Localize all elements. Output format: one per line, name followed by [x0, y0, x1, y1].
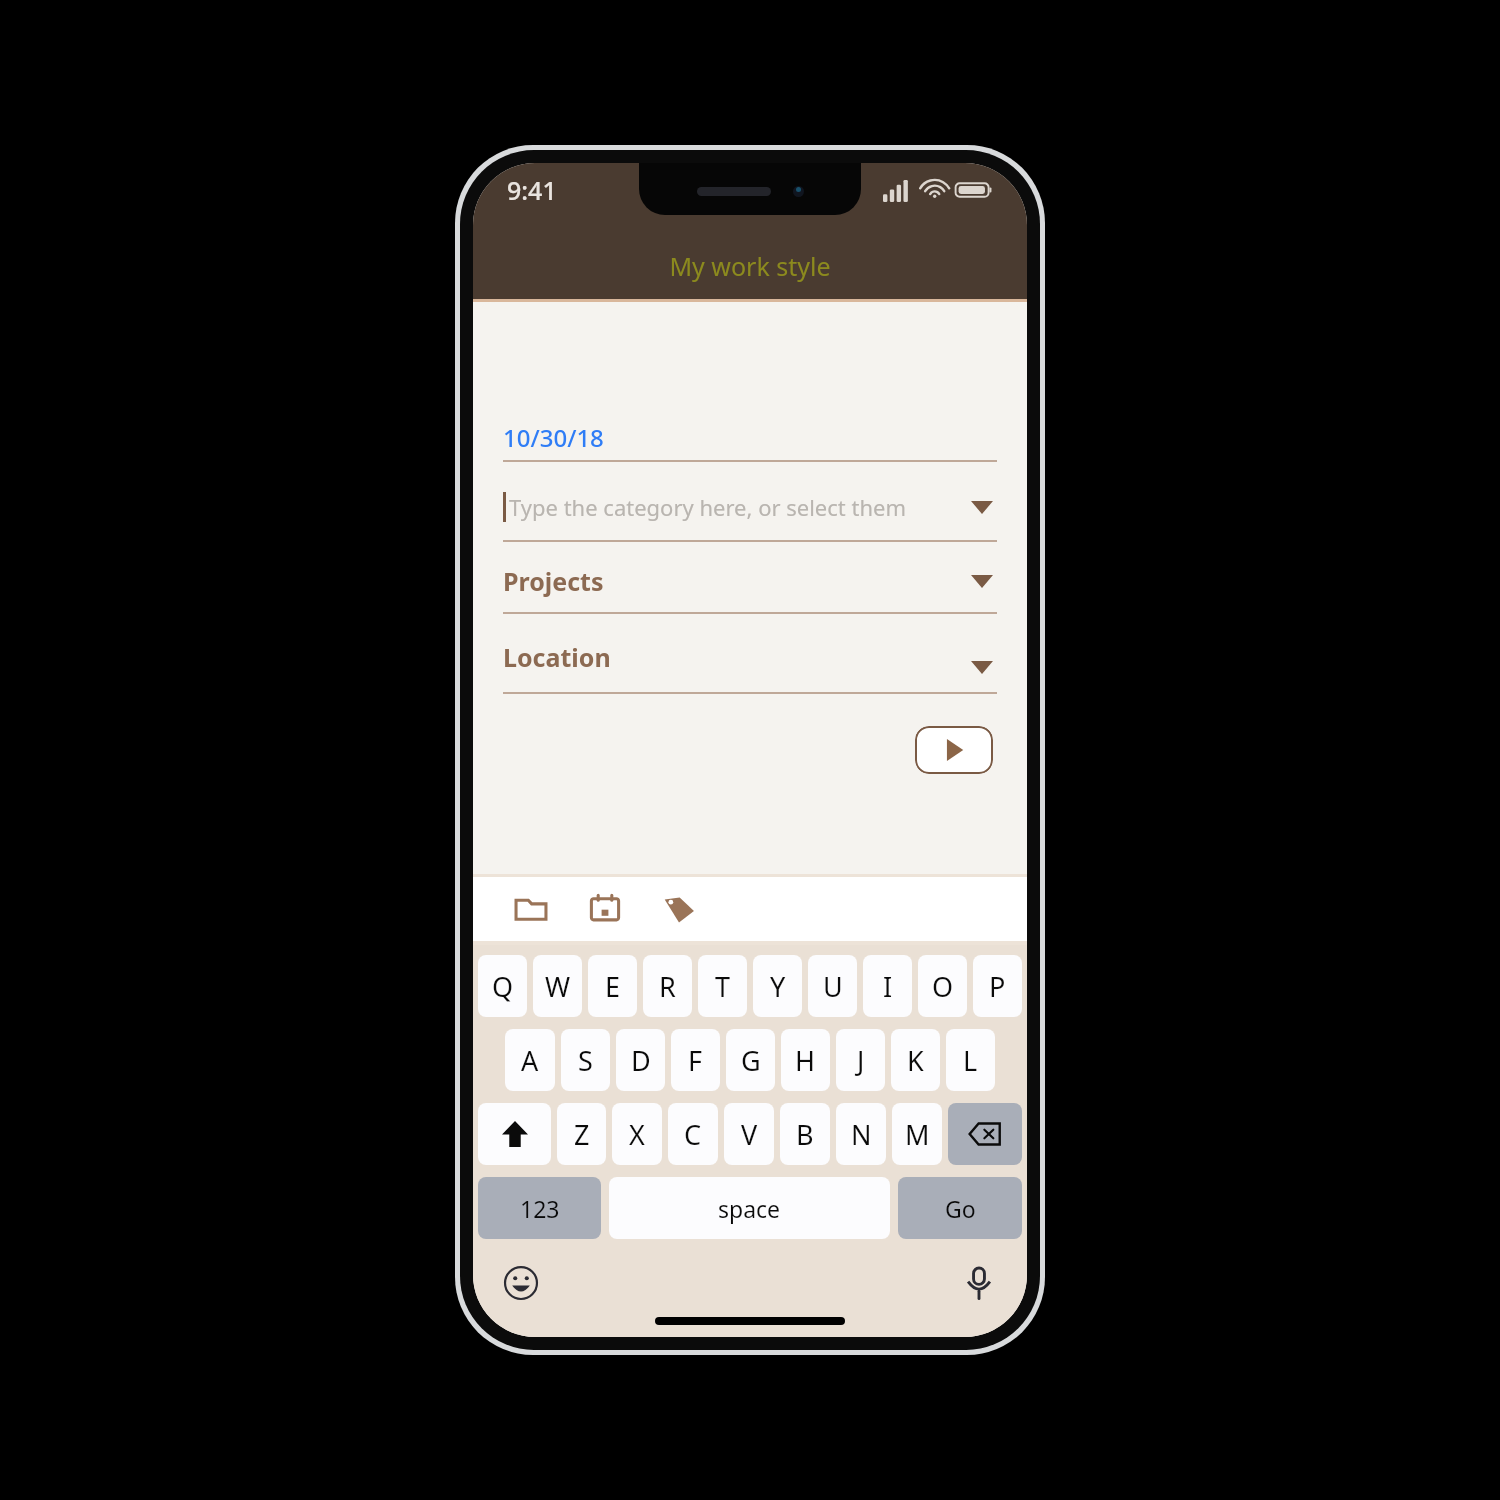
staticText: B [796, 1116, 814, 1153]
button[interactable]: space [609, 1177, 890, 1239]
staticText: L [963, 1042, 978, 1079]
staticText: J [857, 1042, 865, 1079]
button[interactable]: Calendar [583, 887, 627, 931]
staticText: C [684, 1116, 702, 1153]
staticText: W [545, 968, 571, 1005]
staticText: R [659, 968, 676, 1005]
staticText: My work style [669, 249, 831, 283]
button[interactable]: N [836, 1103, 886, 1165]
staticText: F [688, 1042, 703, 1079]
button[interactable]: 10/30/18 [503, 414, 997, 462]
button[interactable]: Z [557, 1103, 606, 1165]
staticText: space [718, 1193, 781, 1224]
button[interactable]: Go [898, 1177, 1022, 1239]
staticText: M [905, 1116, 930, 1153]
button[interactable]: Tag [657, 887, 701, 931]
staticText: I [883, 968, 893, 1005]
button[interactable]: L [946, 1029, 995, 1091]
staticText: P [989, 968, 1006, 1005]
button[interactable]: Y [753, 955, 802, 1017]
button[interactable]: W [533, 955, 582, 1017]
button[interactable]: A [505, 1029, 555, 1091]
button[interactable]: E [588, 955, 637, 1017]
button[interactable]: X [612, 1103, 662, 1165]
button[interactable]: Q [478, 955, 527, 1017]
button[interactable]: C [668, 1103, 718, 1165]
staticText: N [851, 1116, 872, 1153]
staticText: U [823, 968, 843, 1005]
button[interactable]: Folder [509, 887, 553, 931]
button[interactable]: Location [503, 622, 997, 694]
staticText: Y [770, 968, 786, 1005]
staticText: S [578, 1042, 593, 1079]
staticText: Location [503, 640, 611, 674]
button[interactable]: S [561, 1029, 610, 1091]
button[interactable]: O [918, 955, 967, 1017]
button[interactable]: Dictation [959, 1263, 999, 1303]
button[interactable]: H [781, 1029, 830, 1091]
button[interactable]: Shift [478, 1103, 551, 1165]
staticText: Z [574, 1116, 590, 1153]
staticText: Type the category here, or select them [509, 492, 907, 522]
button[interactable]: K [891, 1029, 940, 1091]
staticText: Projects [503, 564, 604, 598]
staticText: 9:41 [507, 173, 557, 207]
staticText: Q [492, 968, 514, 1005]
button[interactable]: Projects [503, 550, 997, 614]
staticText: H [795, 1042, 816, 1079]
staticText: 10/30/18 [503, 421, 604, 454]
button[interactable]: M [892, 1103, 942, 1165]
button[interactable]: F [671, 1029, 720, 1091]
staticText: Go [945, 1193, 976, 1224]
staticText: E [605, 968, 621, 1005]
button[interactable]: I [863, 955, 912, 1017]
button[interactable]: D [616, 1029, 665, 1091]
button[interactable]: R [643, 955, 692, 1017]
button[interactable]: Emoji [501, 1263, 541, 1303]
staticText: A [521, 1042, 539, 1079]
button[interactable]: Type the category here, or select them [503, 474, 997, 542]
staticText: 123 [520, 1193, 560, 1224]
button[interactable]: B [780, 1103, 830, 1165]
button[interactable]: J [836, 1029, 885, 1091]
staticText: X [629, 1116, 645, 1153]
staticText: K [907, 1042, 924, 1079]
button[interactable]: U [808, 955, 857, 1017]
staticText: V [741, 1116, 758, 1153]
staticText: D [631, 1042, 651, 1079]
button[interactable]: G [726, 1029, 775, 1091]
button[interactable]: 123 [478, 1177, 601, 1239]
button[interactable]: V [724, 1103, 774, 1165]
button[interactable]: Start timer [915, 726, 993, 774]
button[interactable]: P [973, 955, 1022, 1017]
button[interactable]: Backspace [948, 1103, 1022, 1165]
staticText: T [715, 968, 731, 1005]
staticText: O [932, 968, 954, 1005]
staticText: G [741, 1042, 761, 1079]
button[interactable]: T [698, 955, 747, 1017]
